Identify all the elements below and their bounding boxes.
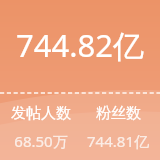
staticText: 744.81亿 [87,131,149,151]
button[interactable]: 粉丝数 [81,102,155,153]
staticText: 发帖人数 [11,104,71,123]
staticText: 744.82亿 [16,24,144,66]
staticText: 68.50万 [14,131,68,151]
button[interactable]: 发帖人数 [5,102,77,153]
button[interactable]: 744.82亿 [0,0,160,92]
staticText: 粉丝数 [96,104,141,123]
